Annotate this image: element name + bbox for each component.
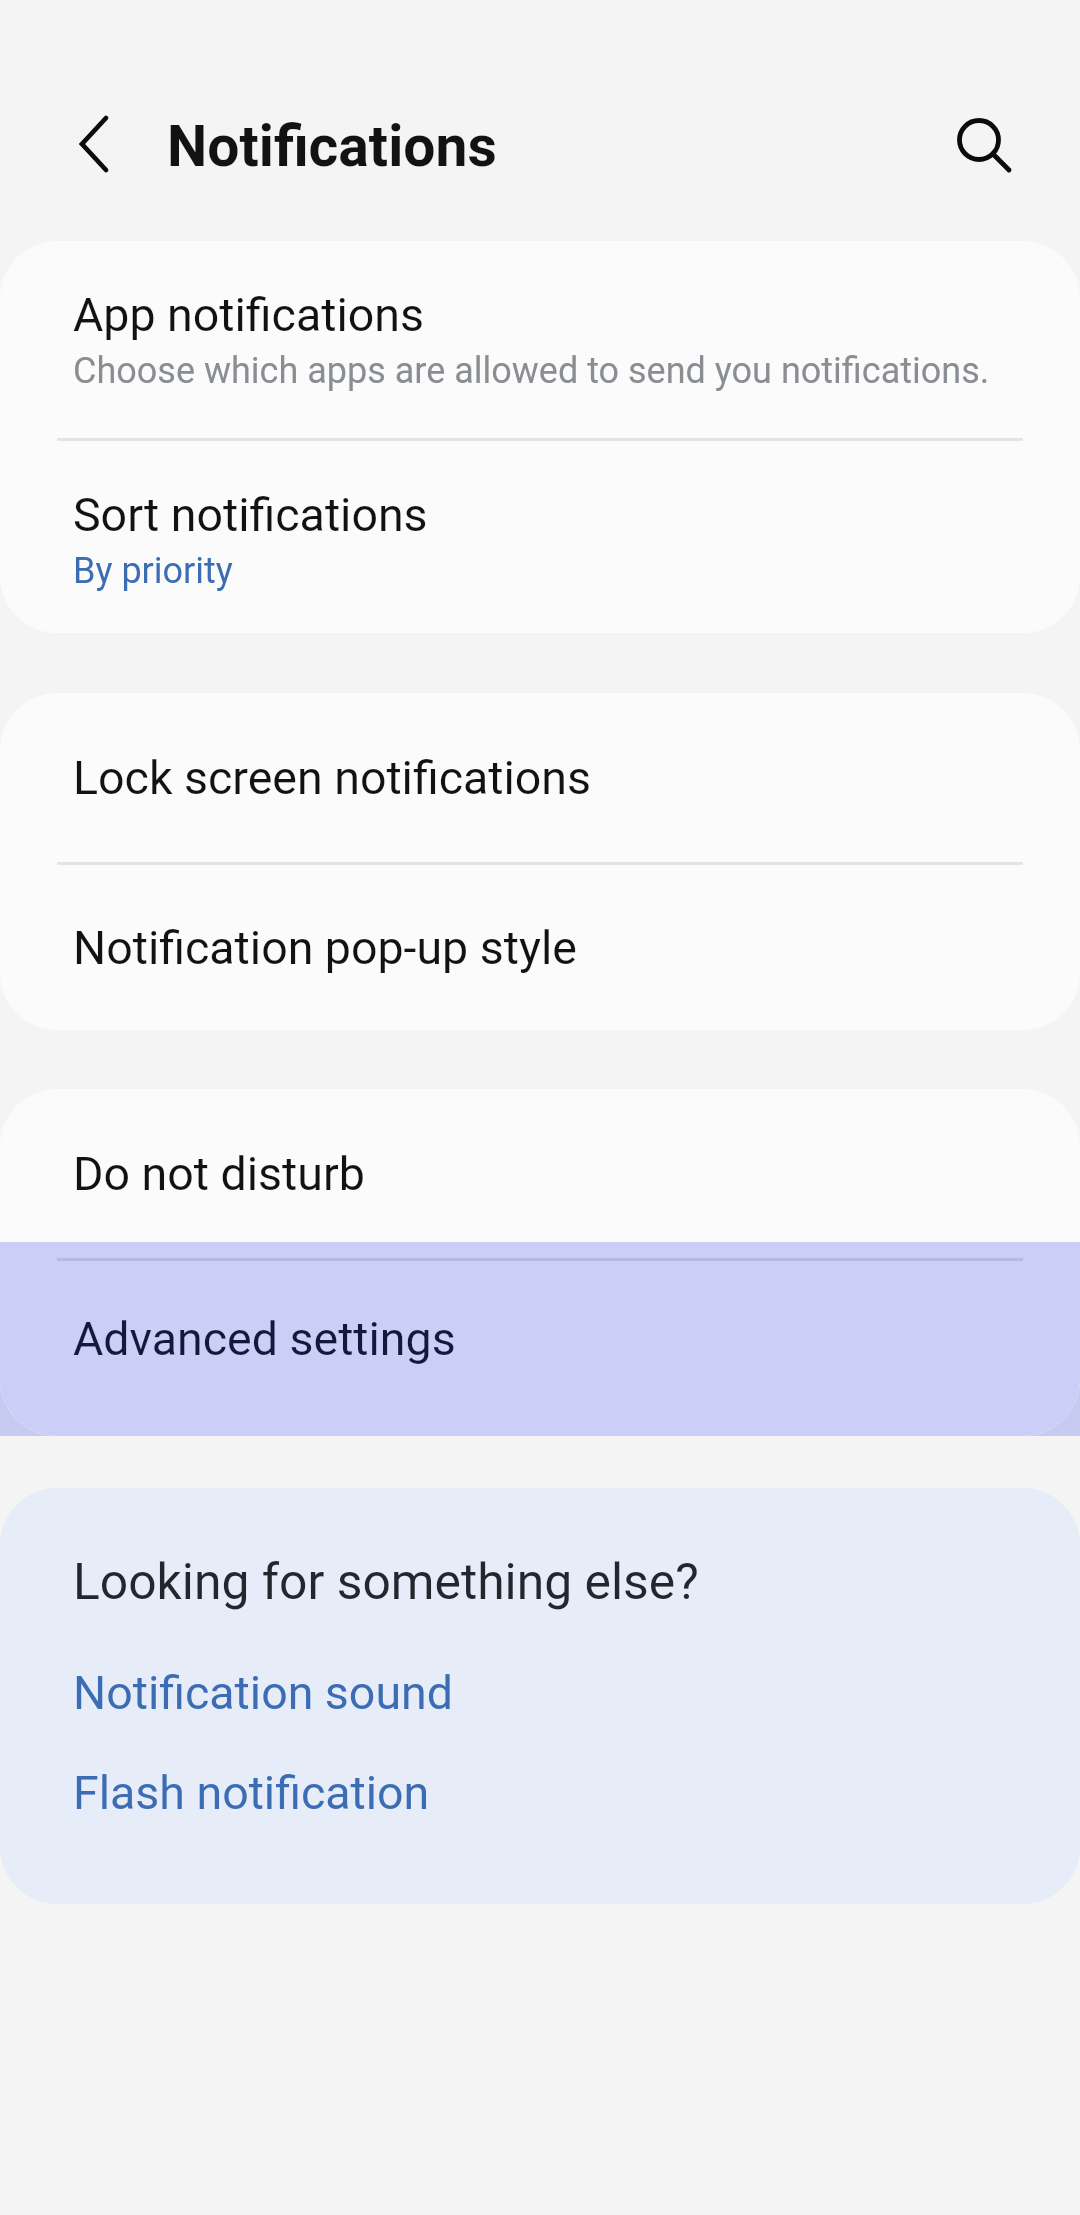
staticText: By priority: [73, 550, 233, 592]
staticText: Advanced settings: [73, 1312, 456, 1366]
button[interactable]: App notifications: [0, 241, 1080, 438]
button[interactable]: Search: [920, 81, 1046, 207]
button[interactable]: Advanced settings: [0, 1242, 1080, 1436]
button[interactable]: Flash notification: [0, 1748, 1080, 1838]
button[interactable]: Notification pop-up style: [0, 865, 1080, 1030]
staticText: Notification sound: [73, 1666, 453, 1720]
button[interactable]: Lock screen notifications: [0, 693, 1080, 862]
button[interactable]: Notification sound: [0, 1648, 1080, 1738]
staticText: Notification pop-up style: [73, 921, 577, 975]
staticText: Looking for something else?: [73, 1553, 699, 1611]
button[interactable]: Back: [31, 81, 157, 207]
staticText: Lock screen notifications: [73, 751, 592, 805]
staticText: Flash notification: [73, 1766, 430, 1820]
button[interactable]: Do not disturb: [0, 1089, 1080, 1242]
button[interactable]: Sort notifications: [0, 441, 1080, 633]
staticText: Sort notifications: [73, 488, 428, 542]
staticText: Do not disturb: [73, 1147, 365, 1201]
staticText: Notifications: [167, 113, 497, 180]
staticText: App notifications: [73, 288, 424, 342]
staticText: Choose which apps are allowed to send yo…: [73, 350, 990, 392]
